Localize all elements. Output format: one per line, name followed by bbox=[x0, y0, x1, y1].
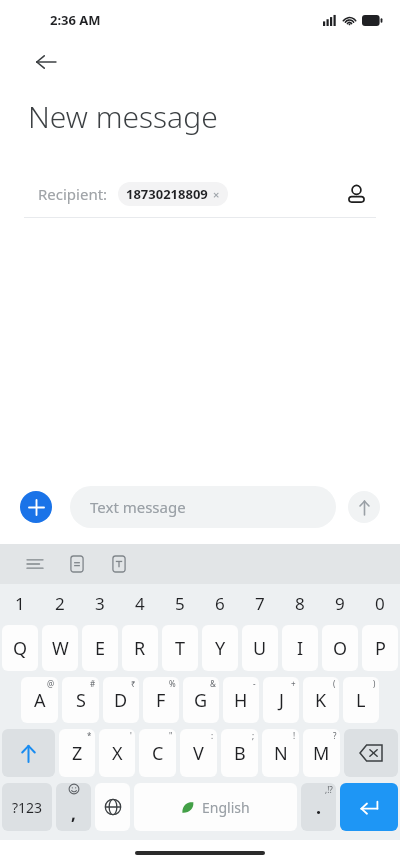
button[interactable]: S bbox=[62, 677, 99, 723]
staticText: # bbox=[90, 678, 96, 689]
staticText: ' bbox=[130, 730, 132, 741]
staticText: ; bbox=[252, 730, 255, 741]
button[interactable]: Shift bbox=[2, 729, 55, 777]
staticText: H bbox=[234, 688, 248, 713]
button[interactable]: O bbox=[322, 625, 358, 671]
button[interactable]: Add attachment bbox=[20, 491, 52, 523]
staticText: X bbox=[112, 741, 123, 766]
staticText: Y bbox=[215, 636, 226, 661]
staticText: @ bbox=[47, 678, 55, 689]
staticText: English bbox=[202, 798, 250, 817]
button[interactable]: P bbox=[362, 625, 398, 671]
button[interactable]: F bbox=[143, 677, 179, 723]
button[interactable]: 2 bbox=[40, 584, 80, 622]
button[interactable]: K bbox=[303, 677, 339, 723]
staticText: N bbox=[274, 741, 288, 766]
staticText: T bbox=[175, 636, 186, 661]
button[interactable]: L bbox=[343, 677, 379, 723]
button[interactable]: Enter bbox=[340, 783, 398, 831]
staticText: New message bbox=[28, 96, 218, 137]
button[interactable]: 6 bbox=[200, 584, 240, 622]
staticText: 8 bbox=[295, 592, 305, 615]
button[interactable]: 4 bbox=[120, 584, 160, 622]
button[interactable]: R bbox=[122, 625, 158, 671]
button[interactable]: 3 bbox=[80, 584, 120, 622]
button[interactable]: Y bbox=[202, 625, 238, 671]
button[interactable]: M bbox=[303, 729, 340, 777]
staticText: 9 bbox=[335, 592, 345, 615]
staticText: I bbox=[297, 636, 304, 661]
button[interactable]: Clipboard bbox=[62, 549, 92, 579]
staticText: 1 bbox=[15, 592, 25, 615]
button[interactable]: 0 bbox=[360, 584, 400, 622]
staticText: . bbox=[316, 795, 322, 820]
button[interactable]: T bbox=[162, 625, 198, 671]
button[interactable]: X bbox=[99, 729, 135, 777]
button[interactable]: A bbox=[21, 677, 58, 723]
button[interactable]: Q bbox=[2, 625, 38, 671]
staticText: 3 bbox=[95, 592, 105, 615]
staticText: & bbox=[210, 678, 216, 689]
button[interactable]: 9 bbox=[320, 584, 360, 622]
staticText: B bbox=[234, 741, 246, 766]
staticText: 18730218809 bbox=[126, 185, 208, 203]
button[interactable]: Text editing bbox=[104, 549, 134, 579]
staticText: ( bbox=[333, 678, 336, 689]
button[interactable]: G bbox=[183, 677, 219, 723]
staticText: O bbox=[333, 636, 348, 661]
button[interactable]: ,!? bbox=[301, 783, 336, 831]
staticText: R bbox=[134, 636, 146, 661]
button[interactable]: Menu bbox=[20, 549, 50, 579]
button[interactable]: Send bbox=[348, 491, 380, 523]
button[interactable]: ?123 bbox=[2, 783, 52, 831]
staticText: D bbox=[114, 688, 128, 713]
button[interactable]: V bbox=[180, 729, 217, 777]
staticText: V bbox=[193, 741, 204, 766]
staticText: M bbox=[313, 741, 330, 766]
button[interactable]: English bbox=[134, 783, 297, 831]
button[interactable]: B bbox=[221, 729, 258, 777]
staticText: 7 bbox=[255, 592, 265, 615]
button[interactable]: J bbox=[263, 677, 299, 723]
staticText: ,!? bbox=[325, 784, 333, 795]
staticText: × bbox=[213, 187, 220, 202]
staticText: S bbox=[76, 688, 86, 713]
button[interactable]: W bbox=[42, 625, 78, 671]
button[interactable]: 5 bbox=[160, 584, 200, 622]
staticText: % bbox=[169, 678, 176, 689]
staticText: : bbox=[211, 730, 214, 741]
button[interactable]: Z bbox=[59, 729, 95, 777]
button[interactable]: Back bbox=[24, 40, 68, 84]
button[interactable]: Text message bbox=[70, 486, 336, 528]
staticText: Recipient: bbox=[38, 184, 108, 204]
staticText: - bbox=[253, 678, 256, 689]
staticText: U bbox=[253, 636, 267, 661]
button[interactable]: Contacts bbox=[336, 174, 376, 214]
button[interactable]: D bbox=[103, 677, 139, 723]
staticText: 2:36 AM bbox=[50, 11, 101, 29]
staticText: A bbox=[34, 688, 46, 713]
button[interactable]: C bbox=[139, 729, 176, 777]
staticText: L bbox=[356, 688, 366, 713]
staticText: ) bbox=[373, 678, 376, 689]
button[interactable]: 8 bbox=[280, 584, 320, 622]
button[interactable]: Change language bbox=[95, 783, 130, 831]
staticText: W bbox=[52, 636, 69, 661]
staticText: ! bbox=[293, 730, 296, 741]
button[interactable]: I bbox=[282, 625, 318, 671]
staticText: , bbox=[71, 802, 76, 825]
staticText: 6 bbox=[215, 592, 225, 615]
staticText: G bbox=[194, 688, 208, 713]
button[interactable]: H bbox=[223, 677, 259, 723]
staticText: C bbox=[152, 741, 164, 766]
button[interactable]: 1 bbox=[0, 584, 40, 622]
button[interactable]: U bbox=[242, 625, 278, 671]
staticText: " bbox=[169, 730, 173, 741]
button[interactable]: Backspace bbox=[344, 729, 398, 777]
staticText: P bbox=[375, 636, 386, 661]
button[interactable]: 7 bbox=[240, 584, 280, 622]
button[interactable]: Recipient: bbox=[24, 171, 336, 217]
button[interactable]: N bbox=[262, 729, 299, 777]
button[interactable]: Emoji and comma bbox=[56, 783, 91, 831]
button[interactable]: E bbox=[82, 625, 118, 671]
